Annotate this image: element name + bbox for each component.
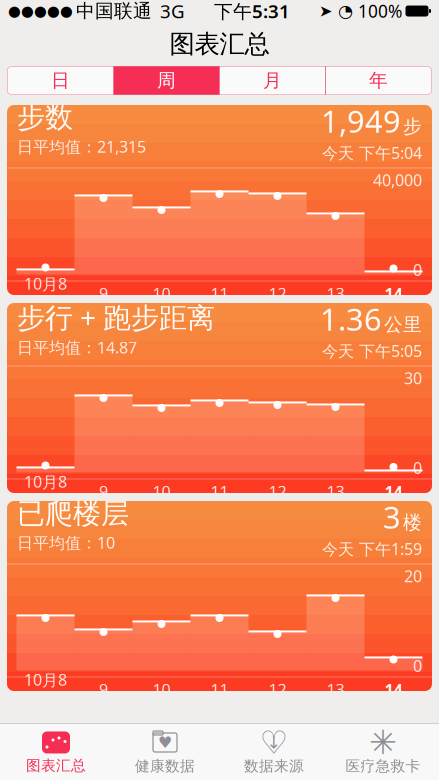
staticText: 健康数据 [135, 757, 195, 775]
staticText: 10月8日 [24, 273, 67, 314]
staticText: ➤ [319, 2, 332, 20]
staticText: ✳ [369, 724, 397, 761]
staticText: 100% [358, 0, 402, 22]
staticText: 11 [210, 481, 228, 502]
button[interactable]: ✳ [328, 724, 437, 780]
staticText: 9 [99, 679, 108, 700]
button[interactable]: 步行 + 跑步距离 [7, 303, 432, 493]
staticText: 11 [210, 283, 228, 304]
staticText: 0 [413, 259, 422, 280]
staticText: 周 [157, 69, 176, 92]
staticText: 日平均值：21,315 [17, 136, 146, 157]
staticText: 日平均值：14.87 [17, 337, 137, 358]
staticText: 医疗急救卡 [345, 757, 420, 775]
staticText: 14 [384, 481, 402, 502]
staticText: 12 [268, 481, 286, 502]
staticText: 11 [210, 679, 228, 700]
staticText: 13 [326, 283, 344, 304]
staticText: 今天 下午5:04 [322, 142, 422, 163]
button[interactable]: 日 [8, 66, 113, 95]
button[interactable]: 月 [220, 66, 325, 95]
staticText: 14 [384, 679, 402, 700]
staticText: ●●●●● [8, 3, 73, 19]
staticText: 日 [51, 69, 70, 92]
button[interactable]: 周 [114, 66, 219, 95]
staticText: 0 [413, 457, 422, 478]
staticText: 今天 下午5:05 [322, 340, 422, 361]
staticText: 10月8日 [24, 471, 67, 512]
staticText: 0 [413, 655, 422, 676]
staticText: ↓ [266, 733, 281, 752]
staticText: ◔ [338, 1, 353, 21]
staticText: 10 [152, 283, 170, 304]
staticText: 40,000 [373, 169, 422, 191]
staticText: 20 [404, 565, 422, 587]
staticText: 年 [369, 69, 388, 92]
staticText: 月 [263, 69, 282, 92]
button[interactable]: 图表汇总 [1, 724, 110, 780]
staticText: 步数 [17, 100, 73, 135]
staticText: 步 [403, 115, 422, 138]
staticText: 数据来源 [244, 757, 304, 775]
staticText: 12 [268, 679, 286, 700]
staticText: ♥ [158, 733, 172, 752]
button[interactable]: 年 [326, 66, 431, 95]
staticText: 图表汇总 [169, 28, 269, 59]
staticText: 14 [384, 283, 402, 304]
staticText: 10 [152, 679, 170, 700]
staticText: 已爬楼层 [17, 496, 129, 531]
staticText: 9 [99, 481, 108, 502]
staticText: 10月8日 [24, 669, 67, 710]
staticText: ♡ [259, 724, 288, 761]
staticText: 1.36 [320, 298, 382, 339]
staticText: 3 [383, 496, 401, 537]
staticText: 中国联通 [76, 0, 152, 22]
button[interactable]: 已爬楼层 [7, 501, 432, 691]
staticText: 今天 下午1:59 [322, 538, 422, 559]
staticText: 1,949 [321, 100, 401, 141]
staticText: 13 [326, 679, 344, 700]
staticText: 13 [326, 481, 344, 502]
staticText: 公里 [384, 313, 422, 336]
staticText: 图表汇总 [26, 756, 86, 774]
staticText: 步行 + 跑步距离 [17, 298, 215, 336]
button[interactable]: 步数 [7, 105, 432, 295]
staticText: 9 [99, 283, 108, 304]
staticText: 日平均值：10 [17, 532, 115, 553]
staticText: 3G [160, 0, 185, 23]
button[interactable]: ♥ [110, 724, 219, 780]
staticText: 30 [404, 367, 422, 389]
staticText: 12 [268, 283, 286, 304]
button[interactable]: ♡ [219, 724, 328, 780]
staticText: 10 [152, 481, 170, 502]
staticText: 楼 [403, 511, 422, 534]
staticText: 下午5:31 [214, 0, 290, 23]
